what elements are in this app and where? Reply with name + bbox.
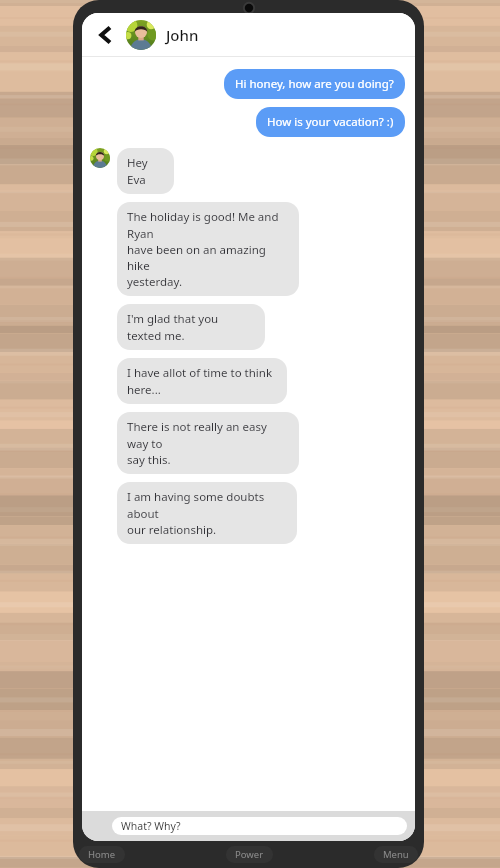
button[interactable]: Back (90, 19, 122, 51)
staticText: How is your vacation? :) (267, 114, 394, 130)
button[interactable]: Home (79, 846, 125, 863)
staticText: Menu (383, 848, 409, 861)
staticText: I am having some doubts about our relati… (127, 489, 287, 537)
staticText: John (166, 25, 199, 45)
staticText: I'm glad that you texted me. (127, 311, 255, 343)
button[interactable]: I have allot of time to think here... (117, 358, 287, 404)
button[interactable]: There is not really an easy way to say t… (117, 412, 299, 474)
staticText: I have allot of time to think here... (127, 365, 277, 397)
staticText: Hi honey, how are you doing? (235, 76, 394, 92)
button[interactable]: Power (226, 846, 273, 863)
button[interactable]: Hey Eva (117, 148, 174, 194)
staticText: Hey Eva (127, 155, 164, 187)
staticText: Power (235, 848, 264, 861)
button[interactable]: The holiday is good! Me and Ryan have be… (117, 202, 299, 296)
staticText: What? Why? (121, 819, 181, 833)
button[interactable]: How is your vacation? :) (256, 107, 405, 137)
button[interactable]: I am having some doubts about our relati… (117, 482, 297, 544)
button[interactable]: Hi honey, how are you doing? (224, 69, 405, 99)
staticText: The holiday is good! Me and Ryan have be… (127, 209, 289, 289)
button[interactable]: Menu (374, 846, 418, 863)
staticText: There is not really an easy way to say t… (127, 419, 289, 467)
button[interactable]: I'm glad that you texted me. (117, 304, 265, 350)
button[interactable]: What? Why? (112, 817, 407, 835)
staticText: Home (88, 848, 116, 861)
